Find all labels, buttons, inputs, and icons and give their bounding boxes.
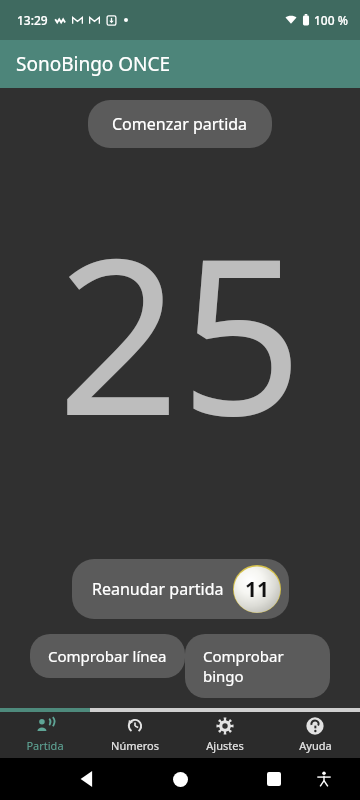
staticText: 11 [245, 575, 270, 604]
other: Recents [267, 772, 281, 786]
button[interactable]: Comenzar partida [88, 100, 272, 148]
other: Accessibility [316, 771, 332, 787]
staticText: Números cantad… [90, 738, 180, 753]
staticText: 25 [57, 185, 303, 478]
staticText: 100 % [314, 12, 348, 28]
staticText: Partida [26, 738, 64, 753]
button[interactable]: Ayuda [270, 712, 360, 758]
staticText: SonoBingo ONCE [16, 51, 171, 77]
button[interactable]: Reanudar partida [72, 559, 289, 619]
staticText: Comprobar bingo [203, 646, 312, 686]
other: Back [79, 771, 95, 787]
button[interactable]: Partida [0, 712, 90, 758]
button[interactable]: Comprobar línea [30, 634, 185, 678]
button[interactable]: Comprobar bingo [185, 634, 330, 698]
staticText: Comprobar línea [48, 646, 167, 666]
staticText: Ajustes [206, 738, 244, 753]
button[interactable]: Ajustes [180, 712, 270, 758]
staticText: Reanudar partida [92, 578, 224, 600]
other: Home [173, 772, 188, 787]
staticText: Comenzar partida [112, 113, 248, 135]
button[interactable]: Números cantados [90, 712, 180, 758]
staticText: 13:29 [17, 12, 48, 28]
staticText: Ayuda [299, 738, 332, 753]
